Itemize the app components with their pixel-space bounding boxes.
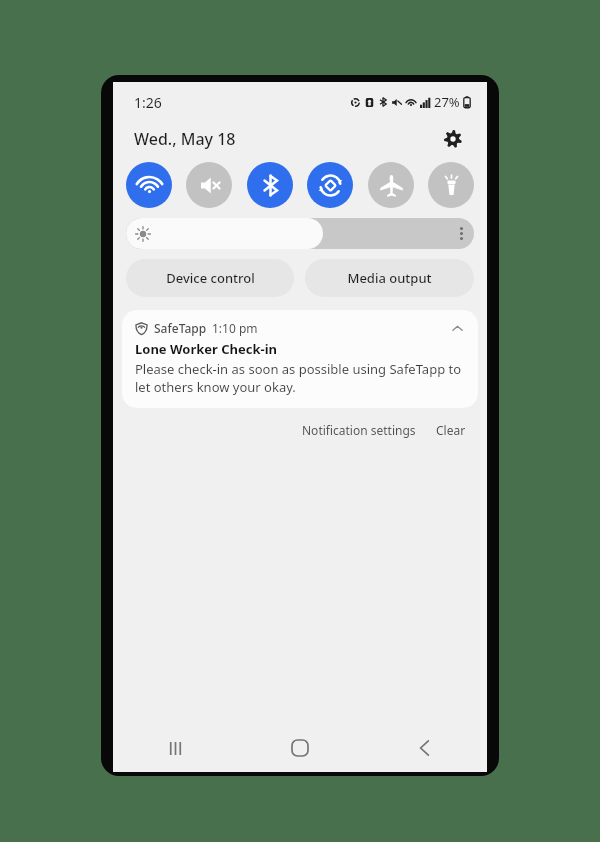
- button[interactable]: Wi-Fi: [126, 162, 172, 208]
- button[interactable]: Clear: [432, 418, 470, 442]
- button[interactable]: Bluetooth: [247, 162, 293, 208]
- button[interactable]: Collapse: [448, 319, 466, 337]
- button[interactable]: Recents: [113, 724, 237, 772]
- button[interactable]: Auto rotate: [307, 162, 353, 208]
- staticText: Device control: [166, 269, 255, 287]
- staticText: Clear: [436, 422, 466, 438]
- button[interactable]: Airplane mode: [368, 162, 414, 208]
- staticText: 1:10 pm: [212, 320, 258, 336]
- button[interactable]: Home: [237, 724, 362, 772]
- button[interactable]: Device control: [126, 259, 294, 297]
- staticText: 27%: [434, 93, 460, 111]
- staticText: Media output: [347, 269, 432, 287]
- staticText: Notification settings: [302, 422, 416, 438]
- staticText: Wed., May 18: [134, 128, 236, 150]
- staticText: Lone Worker Check-in: [135, 340, 278, 358]
- button[interactable]: Back: [362, 724, 487, 772]
- button[interactable]: Flashlight: [428, 162, 474, 208]
- button[interactable]: Notification settings: [298, 418, 420, 442]
- staticText: SafeTapp: [154, 320, 207, 336]
- button[interactable]: Brightness: [126, 218, 474, 249]
- button[interactable]: SafeTapp: [122, 310, 478, 408]
- button[interactable]: Media output: [305, 259, 474, 297]
- button[interactable]: Settings: [439, 125, 467, 153]
- staticText: 1:26: [134, 93, 162, 112]
- button[interactable]: Sound off: [186, 162, 232, 208]
- staticText: Please check-in as soon as possible usin…: [135, 360, 466, 396]
